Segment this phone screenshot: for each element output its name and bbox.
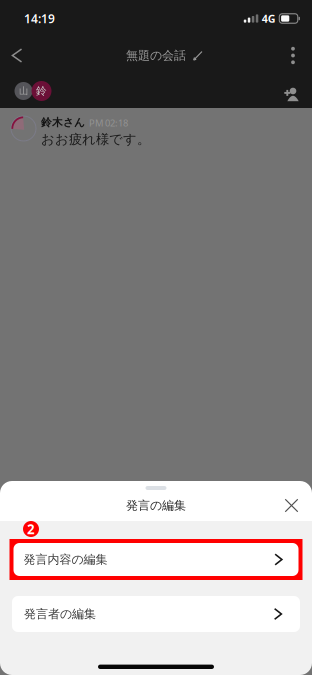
button[interactable]: 発言内容の編集 bbox=[9, 539, 302, 580]
button[interactable]: 発言者の編集 bbox=[12, 596, 300, 632]
staticText: 発言内容の編集 bbox=[23, 552, 107, 567]
staticText: 4G bbox=[262, 11, 276, 26]
staticText: 14:19 bbox=[24, 10, 55, 26]
button[interactable]: Add participant bbox=[276, 78, 304, 104]
staticText: 鈴 bbox=[36, 84, 47, 97]
staticText: おお疲れ様です。 bbox=[41, 131, 150, 147]
staticText: PM 02:18 bbox=[89, 117, 128, 129]
button[interactable]: Close bbox=[277, 491, 305, 519]
staticText: 鈴木さん bbox=[41, 116, 85, 129]
button[interactable]: More options bbox=[276, 38, 310, 72]
staticText: 2 bbox=[27, 520, 35, 538]
staticText: 無題の会話 bbox=[126, 48, 186, 63]
staticText: 発言の編集 bbox=[126, 498, 186, 513]
staticText: 発言者の編集 bbox=[24, 607, 96, 621]
button[interactable]: Back bbox=[2, 38, 36, 72]
staticText: 山 bbox=[19, 85, 28, 97]
